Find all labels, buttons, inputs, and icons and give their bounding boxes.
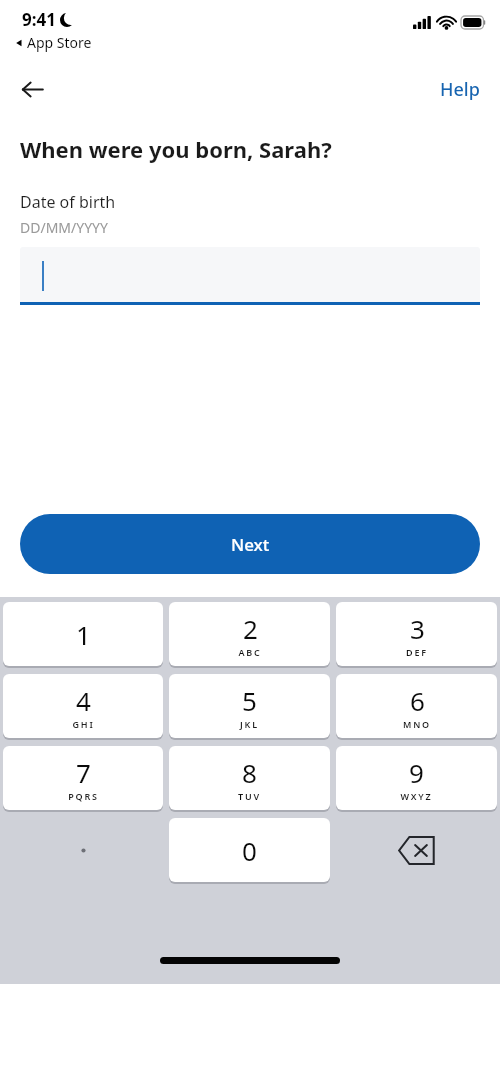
staticText: DD/MM/YYYY bbox=[20, 218, 108, 237]
button[interactable]: 5 bbox=[166, 674, 333, 738]
button[interactable]: 8 bbox=[166, 746, 333, 810]
button[interactable]: Help bbox=[432, 71, 488, 108]
staticText: 2 bbox=[243, 611, 258, 646]
staticText: JKL bbox=[240, 718, 259, 730]
staticText: 6 bbox=[410, 683, 425, 718]
staticText: When were you born, Sarah? bbox=[20, 134, 332, 164]
button[interactable]: 2 bbox=[166, 602, 333, 666]
staticText: 9:41 bbox=[22, 8, 56, 31]
button[interactable]: 1 bbox=[0, 602, 166, 666]
staticText: Next bbox=[231, 533, 270, 556]
staticText: PQRS bbox=[68, 790, 99, 802]
staticText: MNO bbox=[403, 718, 431, 730]
button[interactable]: 6 bbox=[333, 674, 500, 738]
staticText: DEF bbox=[406, 646, 428, 658]
staticText: 0 bbox=[242, 833, 257, 868]
staticText: Help bbox=[440, 77, 480, 102]
staticText: Date of birth bbox=[20, 191, 116, 213]
staticText: GHI bbox=[72, 718, 95, 730]
button[interactable] bbox=[20, 247, 480, 305]
staticText: App Store bbox=[27, 33, 92, 52]
button[interactable]: 0 bbox=[166, 818, 333, 882]
button[interactable]: Back bbox=[10, 67, 54, 111]
button[interactable]: 4 bbox=[0, 674, 166, 738]
staticText: 8 bbox=[242, 755, 257, 790]
staticText: 7 bbox=[76, 755, 91, 790]
staticText: 9 bbox=[409, 755, 424, 790]
staticText: 3 bbox=[410, 611, 425, 646]
button[interactable]: Next bbox=[20, 514, 480, 574]
staticText: 4 bbox=[76, 683, 91, 718]
staticText: ABC bbox=[238, 646, 262, 658]
staticText: 1 bbox=[76, 617, 91, 652]
button[interactable]: Decimal point bbox=[0, 818, 166, 882]
button[interactable]: 7 bbox=[0, 746, 166, 810]
button[interactable]: 3 bbox=[333, 602, 500, 666]
staticText: TUV bbox=[238, 790, 261, 802]
staticText: WXYZ bbox=[400, 790, 433, 802]
button[interactable]: Backspace bbox=[333, 818, 500, 882]
button[interactable]: 9 bbox=[333, 746, 500, 810]
staticText: 5 bbox=[242, 683, 257, 718]
